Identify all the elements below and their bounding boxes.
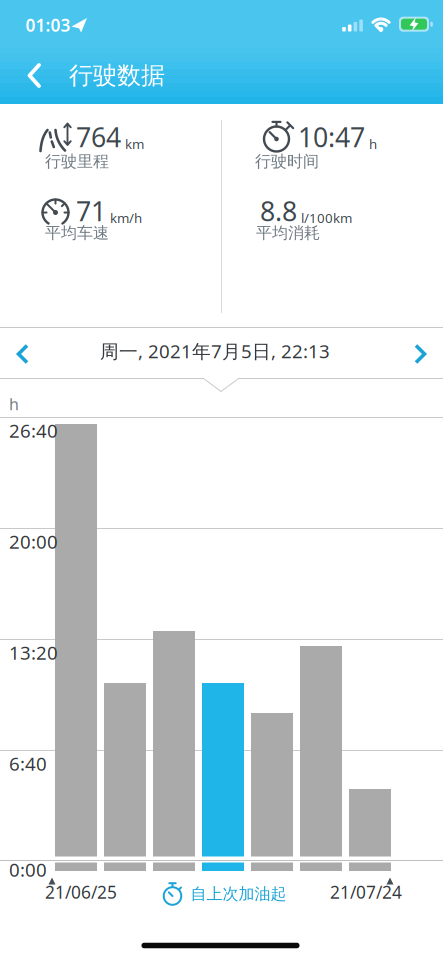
button[interactable]: Previous day: [1, 332, 45, 376]
staticText: 自上次加油起: [190, 884, 286, 904]
staticText: 01:03: [25, 13, 70, 36]
staticText: l/100km: [301, 209, 352, 227]
staticText: h: [369, 135, 377, 153]
staticText: 平均消耗: [256, 223, 320, 243]
staticText: 21/06/25: [45, 880, 117, 903]
staticText: 10:47: [298, 119, 365, 155]
button[interactable]: Day 1: [55, 424, 97, 871]
staticText: 26:40: [9, 418, 58, 443]
button[interactable]: Next day: [398, 332, 442, 376]
button[interactable]: Day 5: [251, 713, 293, 871]
staticText: 行驶数据: [69, 61, 165, 90]
staticText: 行驶里程: [45, 152, 109, 171]
staticText: km: [125, 135, 144, 153]
button[interactable]: Day 4: [202, 683, 244, 871]
staticText: 周一, 2021年7月5日, 22:13: [100, 339, 330, 363]
button[interactable]: Back: [12, 53, 56, 97]
button[interactable]: Day 2: [104, 683, 146, 871]
staticText: 71: [76, 193, 106, 229]
staticText: km/h: [110, 209, 142, 227]
staticText: 6:40: [9, 751, 47, 776]
staticText: 764: [76, 119, 121, 155]
staticText: 平均车速: [45, 223, 109, 243]
staticText: 8.8: [260, 193, 297, 229]
staticText: 13:20: [9, 640, 58, 665]
staticText: 行驶时间: [255, 152, 319, 171]
staticText: h: [9, 393, 19, 415]
button[interactable]: 自上次加油起: [161, 882, 286, 906]
staticText: 21/07/24: [330, 880, 402, 903]
button[interactable]: Day 3: [153, 631, 195, 871]
button[interactable]: Day 7: [349, 789, 391, 871]
button[interactable]: Day 6: [300, 646, 342, 871]
staticText: 20:00: [9, 529, 58, 554]
staticText: 0:00: [9, 857, 47, 882]
